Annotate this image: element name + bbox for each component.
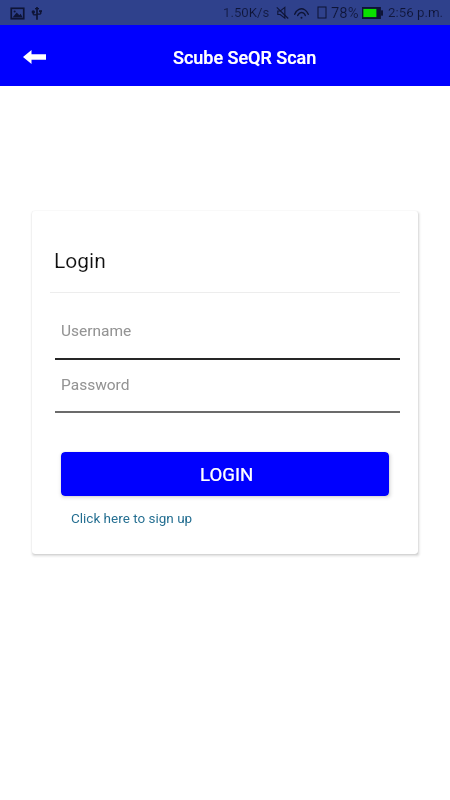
staticText: Password [61,376,130,394]
staticText: Login [54,249,106,274]
staticText: Username [61,322,132,340]
button[interactable]: LOGIN [61,452,389,496]
button[interactable]: Click here to sign up [68,506,196,530]
staticText: 78% [331,4,359,21]
staticText: Click here to sign up [71,510,193,526]
staticText: LOGIN [200,464,254,486]
staticText: Scube SeQR Scan [173,47,317,68]
staticText: 2:56 p.m. [388,5,444,21]
button[interactable]: Back [10,32,57,79]
staticText: 1.50K/s [223,5,270,20]
